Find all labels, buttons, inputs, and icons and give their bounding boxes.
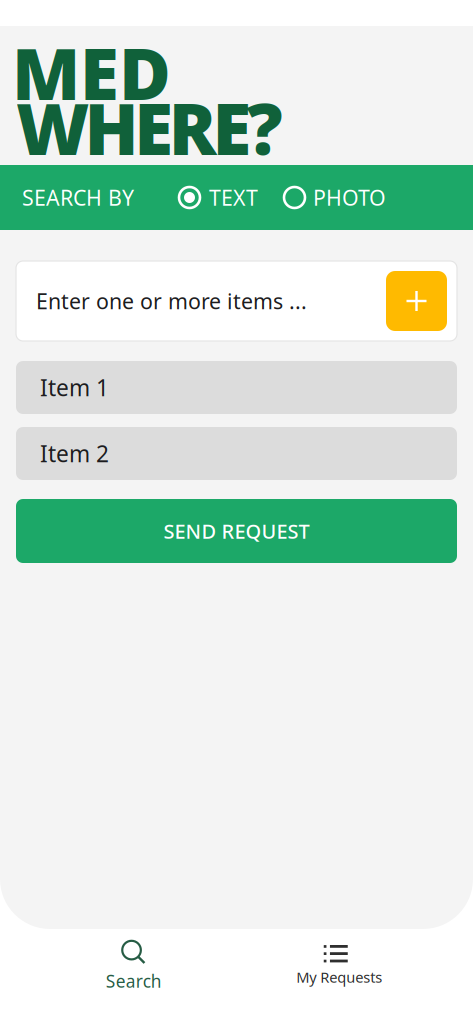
staticText: SEARCH BY	[22, 183, 134, 212]
button[interactable]: My Requests	[236, 939, 442, 999]
staticText: PHOTO	[313, 183, 386, 212]
staticText: SEND REQUEST	[163, 518, 309, 544]
button[interactable]: Search	[31, 939, 236, 999]
button[interactable]: SEND REQUEST	[16, 499, 457, 563]
button[interactable]: PHOTO	[283, 183, 386, 212]
button[interactable]: Item 2	[16, 427, 457, 480]
staticText: Search	[106, 969, 162, 992]
button[interactable]: Item 1	[16, 361, 457, 414]
staticText: WHERE?	[16, 81, 283, 174]
staticText: Item 1	[40, 372, 109, 402]
button[interactable]: Add item	[386, 271, 447, 331]
staticText: Enter one or more items ...	[36, 287, 307, 315]
staticText: Item 2	[40, 438, 109, 468]
staticText: MED	[12, 26, 171, 119]
staticText: TEXT	[209, 183, 258, 212]
staticText: My Requests	[296, 967, 382, 987]
button[interactable]: TEXT	[178, 183, 258, 212]
